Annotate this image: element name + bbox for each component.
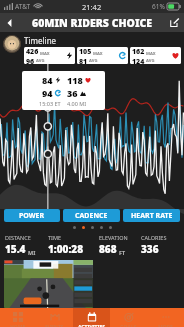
staticText: CADENCE [75,211,108,221]
staticText: TIME [48,234,61,241]
staticText: 61% [152,2,165,11]
staticText: AVG [36,58,45,64]
button[interactable]: Edit [165,13,184,32]
button[interactable]: MORE [147,308,184,327]
staticText: MORE [158,324,173,327]
button[interactable]: HEART RATE [123,209,180,222]
button[interactable]: GOALS [110,308,147,327]
staticText: MAX [93,51,103,57]
staticText: EVENTS [45,324,64,327]
staticText: AT&T [15,2,31,11]
staticText: 36 [67,87,78,99]
staticText: 84 [42,74,53,86]
button[interactable]: 162 [130,47,181,64]
staticText: 15.4 [5,242,26,256]
button[interactable]: POWER [4,209,60,222]
staticText: 94 [42,87,53,99]
staticText: 21:42 [82,2,102,12]
staticText: CALORIES [141,234,167,241]
staticText: Timeline [24,35,57,46]
button[interactable]: 105 [77,47,128,64]
staticText: POWER [19,211,45,221]
staticText: 868 [99,242,117,256]
staticText: ACTIVITIES [78,324,105,327]
staticText: ELEVATION [99,234,128,241]
button[interactable]: HOME [0,308,36,327]
button[interactable]: CADENCE [63,209,120,222]
button[interactable]: EVENTS [36,308,73,327]
staticText: MAX [146,51,156,57]
staticText: MAX [40,51,50,57]
staticText: AVG [89,58,98,64]
button[interactable]: 84 [22,71,105,110]
staticText: 336 [141,242,159,256]
staticText: 60MIN RIDERS CHOICE [32,16,153,30]
staticText: 162 [132,47,145,57]
staticText: AVG [146,58,155,64]
staticText: 81 [79,57,88,64]
button[interactable]: ACTIVITIES [73,308,110,327]
staticText: HOME [10,324,26,327]
staticText: HEART RATE [131,211,173,221]
staticText: 124 [132,57,145,64]
button[interactable]: Ride screenshot [4,260,93,308]
staticText: 1:00:28 [48,242,84,256]
staticText: 4.00 MI [67,100,87,107]
staticText: 96 [26,57,35,64]
staticText: 426 [26,47,39,57]
staticText: 15:03 ET [39,100,61,107]
staticText: MI [28,249,36,256]
button[interactable]: Back [0,13,19,32]
staticText: GOALS [120,324,137,327]
staticText: 118 [67,74,83,86]
button[interactable]: 426 [24,47,75,64]
button[interactable]: Profile [3,35,21,53]
staticText: FT [119,249,126,256]
staticText: DISTANCE [5,234,31,241]
staticText: 105 [79,47,92,57]
